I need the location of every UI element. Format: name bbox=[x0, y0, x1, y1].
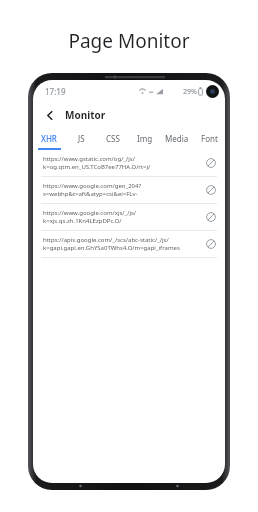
staticText: Font bbox=[201, 133, 218, 144]
button[interactable]: https://www.google.com/xjs/_/js/k=xjs.qs… bbox=[33, 204, 225, 230]
button[interactable]: XHR bbox=[33, 128, 65, 148]
staticText: https://www.gstatic.com/og/_/js/k=og.qtm… bbox=[43, 155, 197, 171]
button[interactable]: Block request bbox=[203, 155, 219, 171]
staticText: Page Monitor bbox=[68, 28, 190, 54]
button[interactable]: https://www.gstatic.com/og/_/js/k=og.qtm… bbox=[33, 150, 225, 176]
staticText: Media bbox=[165, 133, 189, 144]
button[interactable]: CSS bbox=[97, 128, 129, 148]
button[interactable]: Block request bbox=[203, 236, 219, 252]
staticText: JS bbox=[78, 133, 85, 144]
button[interactable]: https://www.google.com/gen_204?s=webhp&t… bbox=[33, 177, 225, 203]
staticText: Monitor bbox=[65, 108, 106, 122]
staticText: 29% bbox=[183, 87, 197, 97]
button[interactable]: Img bbox=[129, 128, 161, 148]
button[interactable]: Font bbox=[193, 128, 225, 148]
staticText: CSS bbox=[106, 133, 120, 144]
button[interactable]: https://apis.google.com/_/scs/abc-static… bbox=[33, 231, 225, 257]
button[interactable]: Block request bbox=[203, 209, 219, 225]
button[interactable]: Back bbox=[41, 106, 59, 124]
staticText: https://www.google.com/gen_204?s=webhp&t… bbox=[43, 182, 197, 198]
staticText: 17:19 bbox=[45, 86, 66, 97]
staticText: https://apis.google.com/_/scs/abc-static… bbox=[43, 236, 197, 252]
button[interactable]: JS bbox=[65, 128, 97, 148]
staticText: XHR bbox=[41, 133, 57, 144]
button[interactable]: Media bbox=[161, 128, 193, 148]
button[interactable]: Block request bbox=[203, 182, 219, 198]
staticText: Img bbox=[137, 133, 153, 144]
staticText: https://www.google.com/xjs/_/js/k=xjs.qs… bbox=[43, 209, 197, 225]
